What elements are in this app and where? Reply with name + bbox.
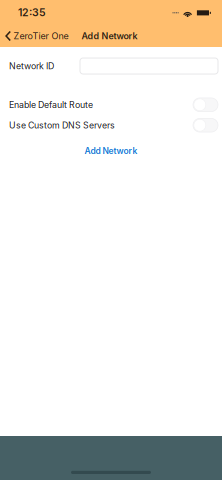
button[interactable]: Network ID field — [80, 58, 218, 74]
staticText: Enable Default Route — [9, 99, 93, 110]
button[interactable]: Add Network — [0, 141, 222, 160]
staticText: 12:35 — [18, 6, 46, 19]
staticText: Add Network — [81, 31, 137, 41]
staticText: Add Network — [84, 146, 137, 156]
staticText: Network ID — [9, 61, 54, 71]
button[interactable]: Use Custom DNS Servers — [193, 118, 218, 132]
button[interactable]: Enable Default Route — [193, 98, 218, 112]
staticText: ZeroTier One — [14, 30, 69, 41]
button[interactable]: ZeroTier One — [0, 26, 75, 45]
staticText: Use Custom DNS Servers — [9, 120, 115, 130]
